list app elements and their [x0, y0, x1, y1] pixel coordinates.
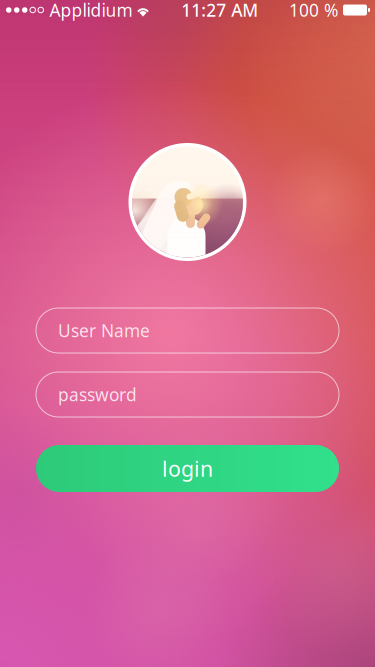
staticText: 100 %	[289, 0, 338, 21]
button[interactable]: login	[36, 445, 339, 492]
button[interactable]: User Name	[36, 308, 339, 353]
staticText: 11:27 AM	[181, 0, 258, 21]
staticText: login	[162, 454, 213, 483]
staticText: User Name	[58, 319, 150, 342]
staticText: Applidium	[49, 0, 132, 21]
staticText: password	[58, 383, 137, 406]
button[interactable]: password	[36, 372, 339, 417]
